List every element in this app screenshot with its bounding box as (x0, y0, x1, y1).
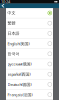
button[interactable]: English(美国) (6, 39, 53, 49)
staticText: español(西国) (7, 71, 30, 77)
staticText: 10:24 (1, 0, 10, 4)
button[interactable]: español(西国) (6, 69, 53, 79)
staticText: 中文 (7, 10, 15, 15)
button[interactable]: 日本語 (6, 28, 53, 39)
button[interactable]: русский(俄国) (6, 59, 53, 69)
staticText: 繁體 (7, 21, 15, 26)
button[interactable]: Deutsch(德国) (6, 79, 53, 90)
staticText: 日本語 (7, 31, 19, 36)
staticText: 한국어 (7, 51, 19, 56)
button[interactable]: 繁體 (6, 18, 53, 28)
staticText: Français(法国) (7, 92, 32, 97)
staticText: Deutsch(德国) (7, 82, 31, 87)
staticText: English(美国) (7, 41, 29, 46)
button[interactable]: 中文 (6, 8, 53, 18)
button[interactable]: Back (0, 3, 7, 8)
button[interactable]: Français(法国) (6, 90, 53, 100)
button[interactable]: 한국어 (6, 49, 53, 59)
staticText: русский(俄国) (7, 61, 31, 67)
